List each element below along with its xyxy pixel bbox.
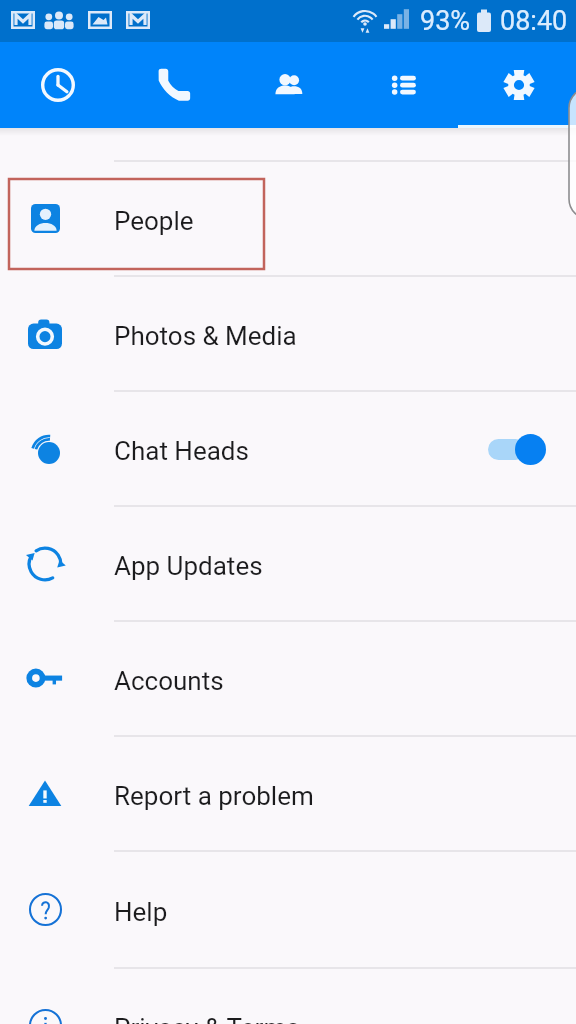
button[interactable]: Settings	[461, 42, 576, 128]
button[interactable]: Privacy & Terms	[0, 968, 576, 1024]
staticText: Photos & Media	[114, 321, 297, 351]
button[interactable]: Contacts	[231, 42, 346, 128]
button[interactable]: Groups	[346, 42, 461, 128]
button[interactable]: People	[0, 161, 576, 276]
button[interactable]: Accounts	[0, 621, 576, 736]
staticText: Chat Heads	[114, 436, 249, 466]
staticText: 93%	[420, 5, 471, 37]
button[interactable]: Report a problem	[0, 736, 576, 851]
staticText: Privacy & Terms	[114, 1013, 300, 1024]
button[interactable]: Photos & Media	[0, 276, 576, 391]
button[interactable]: Help	[0, 851, 576, 968]
button[interactable]: Recent calls	[0, 42, 116, 128]
staticText: Report a problem	[114, 781, 314, 811]
button[interactable]: Chat Heads	[0, 391, 576, 506]
staticText: Accounts	[114, 666, 224, 696]
button[interactable]: Dialer	[116, 42, 231, 128]
staticText: App Updates	[114, 551, 263, 581]
staticText: People	[114, 206, 194, 236]
staticText: Help	[114, 897, 168, 927]
button[interactable]: App Updates	[0, 506, 576, 621]
button[interactable]: Toggle Chat Heads	[485, 427, 551, 471]
staticText: 08:40	[500, 5, 568, 37]
